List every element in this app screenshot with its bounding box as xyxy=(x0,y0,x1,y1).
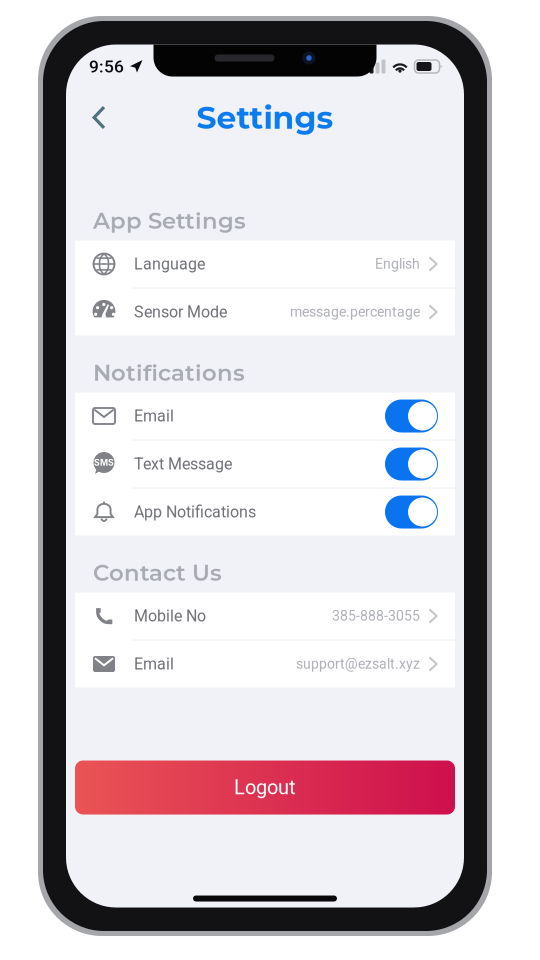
staticText: Logout xyxy=(234,776,296,799)
staticText: Language xyxy=(134,255,205,273)
button[interactable]: Email xyxy=(75,392,455,439)
staticText: App Settings xyxy=(93,207,246,234)
staticText: Email xyxy=(134,407,174,425)
staticText: Settings xyxy=(196,98,333,137)
staticText: Text Message xyxy=(134,455,232,473)
button[interactable]: Email xyxy=(75,640,455,687)
staticText: 9:56 xyxy=(89,56,124,77)
button[interactable]: Sensor Mode xyxy=(75,288,455,335)
button[interactable]: Language xyxy=(75,240,455,287)
button[interactable]: Back xyxy=(78,96,120,138)
staticText: Email xyxy=(134,655,174,673)
staticText: Mobile No xyxy=(134,607,206,625)
staticText: Sensor Mode xyxy=(134,303,227,321)
staticText: support@ezsalt.xyz xyxy=(296,656,420,672)
button[interactable]: Mobile No xyxy=(75,592,455,639)
button[interactable]: SMS xyxy=(75,440,455,487)
staticText: App Notifications xyxy=(134,503,256,521)
staticText: message.percentage xyxy=(290,304,420,320)
staticText: 385-888-3055 xyxy=(332,608,420,624)
button[interactable]: Logout xyxy=(75,760,455,814)
staticText: SMS xyxy=(94,457,114,468)
staticText: Contact Us xyxy=(93,559,222,586)
button[interactable]: App Notifications xyxy=(75,488,455,535)
staticText: Notifications xyxy=(93,359,245,386)
staticText: English xyxy=(375,256,420,272)
